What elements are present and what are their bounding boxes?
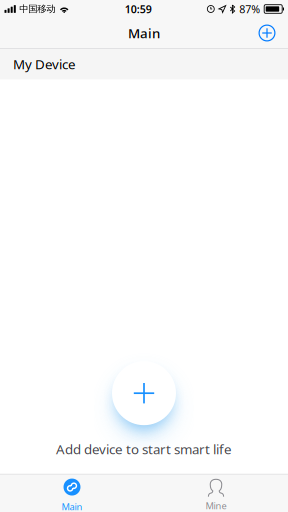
staticText: Main xyxy=(128,24,160,42)
staticText: My Device xyxy=(13,55,76,73)
staticText: Main xyxy=(61,501,82,512)
staticText: 中国移动 xyxy=(19,3,55,15)
button[interactable]: Mine xyxy=(144,474,288,512)
staticText: Mine xyxy=(205,499,226,512)
button[interactable]: Main xyxy=(0,474,144,512)
button[interactable]: Add device xyxy=(246,18,288,48)
staticText: 87% xyxy=(239,2,260,16)
staticText: 10:59 xyxy=(125,2,152,16)
staticText: Add device to start smart life xyxy=(56,440,232,458)
button[interactable]: Add device xyxy=(100,349,188,437)
